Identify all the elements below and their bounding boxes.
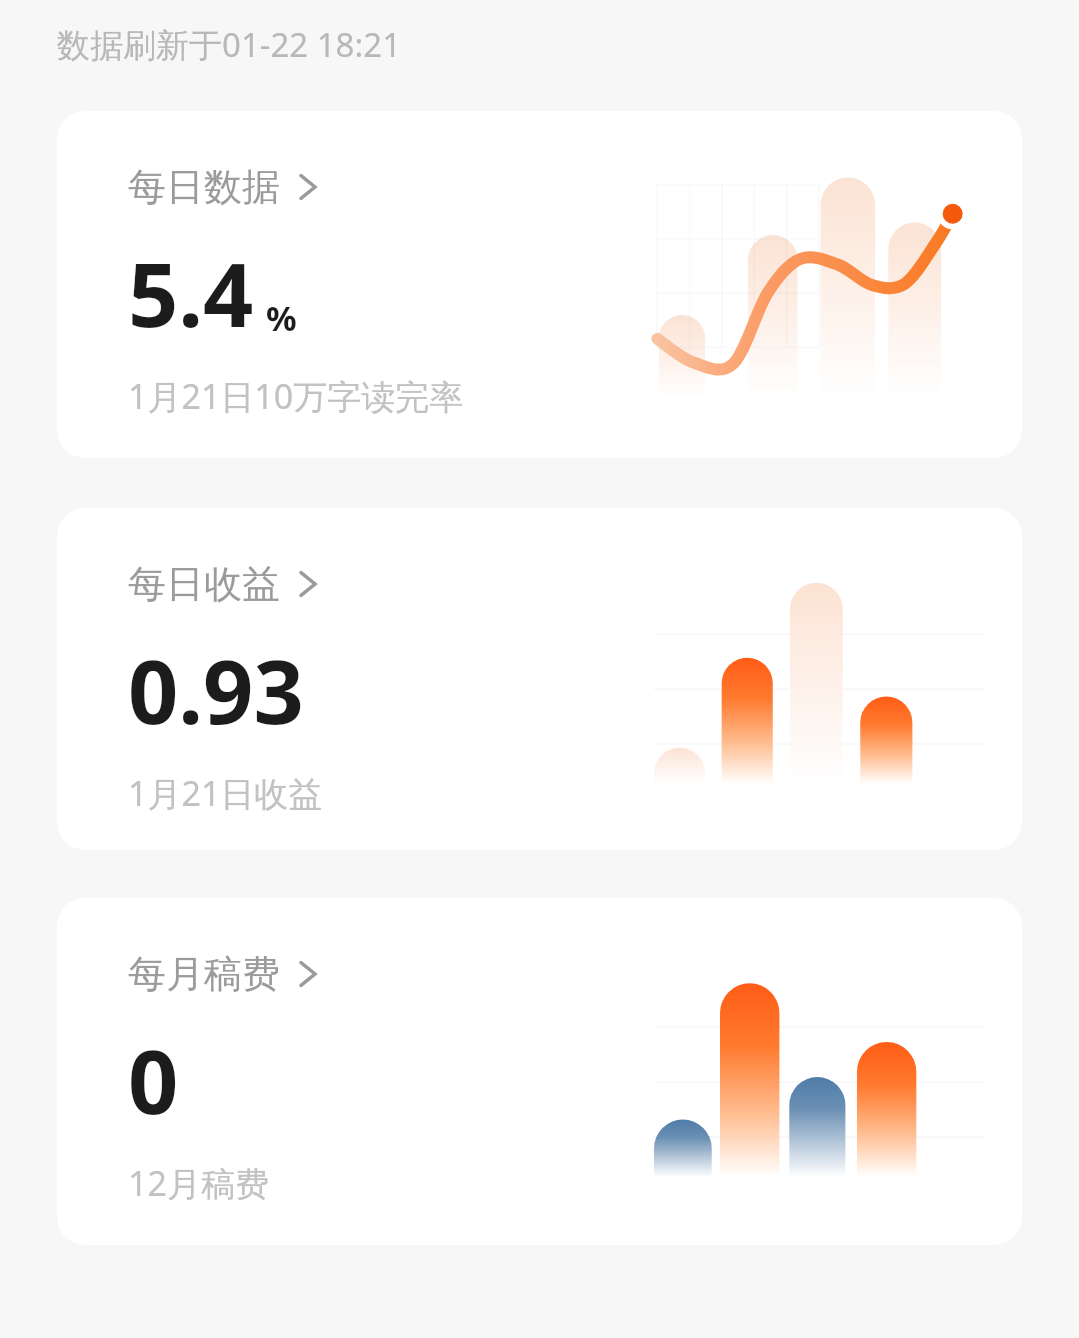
staticText: 1月21日收益 xyxy=(128,770,323,816)
staticText: 数据刷新于01-22 18:21 xyxy=(57,22,402,67)
staticText: 每日数据 xyxy=(128,163,280,211)
staticText: 0 xyxy=(128,1020,179,1140)
button[interactable]: 每日收益 xyxy=(57,508,1022,850)
staticText: 每日收益 xyxy=(128,560,280,608)
staticText: 0.93 xyxy=(128,630,304,750)
staticText: 5.4 xyxy=(128,233,254,353)
button[interactable]: 每日数据 xyxy=(57,111,1022,458)
staticText: % xyxy=(266,295,297,341)
staticText: 12月稿费 xyxy=(128,1160,269,1206)
staticText: 每月稿费 xyxy=(128,950,280,998)
staticText: 1月21日10万字读完率 xyxy=(128,373,464,419)
button[interactable]: 每月稿费 xyxy=(57,898,1022,1245)
